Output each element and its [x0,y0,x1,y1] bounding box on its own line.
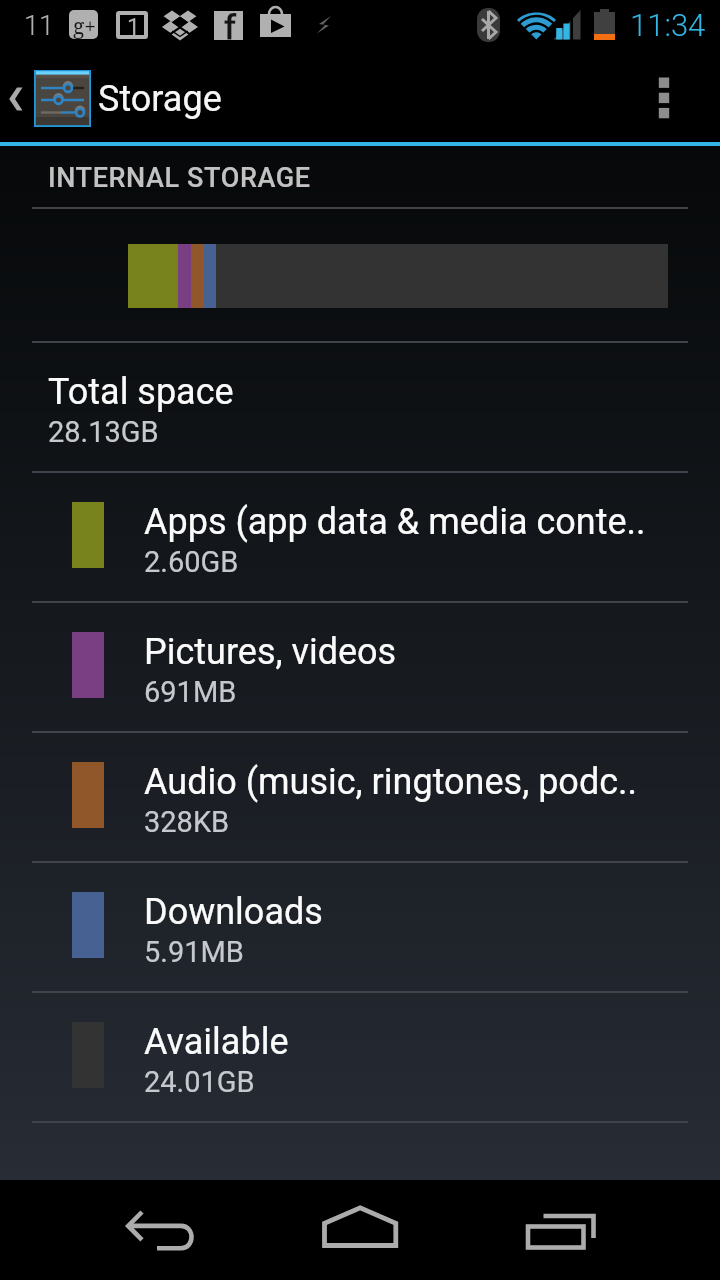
button[interactable]: More options [648,50,720,146]
button[interactable]: Home [296,1180,424,1276]
staticText: Downloads [144,891,323,933]
button[interactable]: Pictures, videos [0,603,720,731]
staticText: Storage [98,78,222,120]
staticText: INTERNAL STORAGE [48,162,311,194]
staticText: 691MB [144,675,237,709]
button[interactable]: Downloads [0,863,720,991]
staticText: 11:34 [630,7,706,43]
staticText: f [224,7,236,47]
button[interactable]: Audio (music, ringtones, podc.. [0,733,720,861]
button[interactable]: Apps (app data & media conte.. [0,473,720,601]
staticText: 5.91MB [144,935,244,969]
button[interactable]: Recent apps [496,1180,624,1276]
staticText: Apps (app data & media conte.. [144,501,646,543]
staticText: Available [144,1021,289,1063]
button[interactable]: Back [96,1180,224,1276]
staticText: Total space [48,371,234,413]
staticText: 24.01GB [144,1065,255,1099]
button[interactable]: Available [0,993,720,1121]
staticText: Pictures, videos [144,631,397,673]
staticText: 2.60GB [144,545,239,579]
button[interactable]: Navigate up [0,70,230,127]
staticText: 28.13GB [48,415,159,449]
staticText: 11 [24,10,54,42]
staticText: g+ [73,12,97,41]
staticText: Audio (music, ringtones, podc.. [144,761,638,803]
staticText: 328KB [144,805,230,839]
other: Navigate up [6,79,28,119]
button[interactable]: Total space [0,343,720,471]
staticText: 1 [127,14,140,41]
